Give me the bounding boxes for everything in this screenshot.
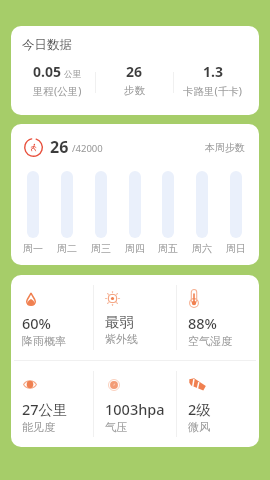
staticText: /42000	[72, 142, 103, 155]
staticText: 60%	[22, 313, 51, 333]
button[interactable]: 27公里	[11, 361, 93, 447]
staticText: 紫外线	[105, 332, 138, 346]
button[interactable]: 1.3	[174, 62, 251, 98]
staticText: 1003hpa	[105, 399, 165, 419]
staticText: 27公里	[22, 399, 68, 419]
staticText: 步数	[124, 84, 145, 97]
button[interactable]: 2级	[177, 361, 259, 447]
staticText: 降雨概率	[22, 334, 66, 348]
staticText: 卡路里(千卡)	[183, 84, 242, 98]
staticText: 里程(公里)	[33, 84, 82, 98]
staticText: 公里	[64, 69, 81, 80]
staticText: 今日数据	[22, 37, 72, 53]
button[interactable]: 1003hpa	[94, 361, 176, 447]
button[interactable]: 88%	[177, 275, 259, 360]
staticText: 1.3	[203, 62, 223, 81]
staticText: 能见度	[22, 420, 55, 434]
staticText: 微风	[188, 420, 210, 434]
staticText: 本周步数	[205, 141, 245, 154]
staticText: 88%	[188, 313, 217, 333]
staticText: 最弱	[105, 313, 134, 331]
staticText: 周五	[158, 242, 178, 255]
staticText: 26	[50, 136, 69, 158]
button[interactable]: 26	[96, 62, 173, 97]
staticText: 26	[126, 62, 143, 81]
staticText: 2级	[188, 399, 211, 419]
staticText: 空气湿度	[188, 334, 232, 348]
button[interactable]: 0.05	[19, 62, 95, 98]
staticText: 周四	[125, 242, 145, 255]
button[interactable]: 60%	[11, 275, 93, 360]
staticText: 周三	[91, 242, 111, 255]
staticText: 周六	[192, 242, 212, 255]
staticText: 气压	[105, 420, 127, 434]
staticText: 0.05	[33, 62, 61, 81]
button[interactable]: 最弱	[94, 275, 176, 360]
staticText: 周一	[23, 242, 43, 255]
staticText: 周二	[57, 242, 77, 255]
staticText: 周日	[226, 242, 246, 255]
